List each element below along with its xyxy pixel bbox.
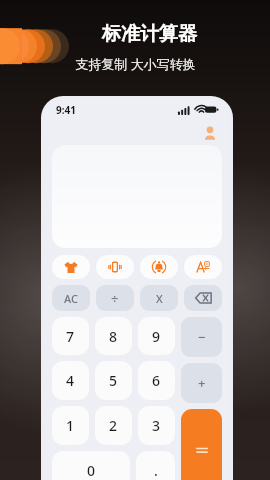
staticText: 5 <box>109 371 118 390</box>
button[interactable]: Theme <box>52 255 90 279</box>
staticText: 1 <box>66 416 75 435</box>
button[interactable]: X <box>140 285 178 311</box>
button[interactable]: AC <box>52 285 90 311</box>
staticText: 9 <box>152 327 161 346</box>
button[interactable]: 7 <box>52 317 89 355</box>
button[interactable]: 5 <box>95 361 132 400</box>
staticText: 3 <box>152 416 161 435</box>
button[interactable]: 8 <box>95 317 132 355</box>
staticText: AC <box>64 291 78 306</box>
staticText: 8 <box>109 327 118 346</box>
staticText: − <box>198 328 206 346</box>
button[interactable]: 1 <box>52 406 89 445</box>
button[interactable]: 6 <box>138 361 175 400</box>
button[interactable]: 3 <box>138 406 175 445</box>
staticText: 2 <box>109 416 118 435</box>
staticText: 支持复制 大小写转换 <box>75 55 196 73</box>
button[interactable]: Equals <box>181 409 222 480</box>
staticText: . <box>154 461 158 480</box>
button[interactable]: − <box>181 317 222 357</box>
button[interactable]: Case convert <box>184 255 222 279</box>
staticText: 6 <box>152 371 161 390</box>
button[interactable]: Vibration <box>96 255 134 279</box>
button[interactable]: Account <box>202 125 218 141</box>
button[interactable]: Backspace <box>184 285 222 311</box>
button[interactable]: Sound <box>140 255 178 279</box>
staticText: 7 <box>66 327 75 346</box>
staticText: + <box>198 374 206 392</box>
button[interactable]: ÷ <box>96 285 134 311</box>
button[interactable]: 2 <box>95 406 132 445</box>
button[interactable]: . <box>136 451 175 480</box>
staticText: 4 <box>66 371 75 390</box>
button[interactable]: 9 <box>138 317 175 355</box>
staticText: X <box>156 291 163 306</box>
button[interactable]: + <box>181 363 222 403</box>
button[interactable]: 4 <box>52 361 89 400</box>
staticText: 9:41 <box>56 103 76 117</box>
staticText: ÷ <box>111 289 119 307</box>
staticText: 0 <box>87 461 96 480</box>
button[interactable]: 0 <box>52 451 130 480</box>
staticText: 标准计算器 <box>102 22 197 46</box>
